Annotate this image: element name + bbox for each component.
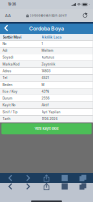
button[interactable]: Reload [79,9,91,22]
staticText: Soyadi [2,55,13,59]
staticText: Tel [2,76,7,80]
staticText: Yeni kayit ekle [34,126,58,131]
staticText: Adi [2,49,7,53]
staticText: 14803 [41,69,50,73]
button[interactable]: Back [1,172,19,183]
button[interactable]: Tabs [74,181,92,192]
staticText: M [41,83,44,87]
staticText: Beden [2,83,12,87]
staticText: Aktif [41,103,48,107]
staticText: Durum [2,96,12,100]
button[interactable]: Bookmarks [56,172,74,183]
staticText: 17.04.2024 [41,117,57,121]
button[interactable]: Yeni kayit ekle [1,123,92,134]
staticText: AA [5,13,11,18]
button[interactable]: Back [1,181,19,192]
staticText: cordobaboya.hizgin.gov.tr [30,14,67,17]
staticText: Cordoba Boya [29,25,64,32]
staticText: Sinif / Tip [2,110,17,114]
staticText: Sertbir Mavi [2,35,21,39]
button[interactable]: Share [37,172,56,183]
button[interactable]: Tabs [74,172,92,183]
staticText: Marka/Kod [2,62,19,66]
staticText: Ilce / Koy [2,90,17,93]
button[interactable]: Page settings [2,9,14,22]
staticText: 19:36 [8,3,16,6]
button[interactable]: Back [0,22,12,34]
staticText: Adres [2,69,11,73]
staticText: Ayri Yapilan [41,110,60,114]
staticText: Meltem [41,49,53,53]
staticText: 43°N [41,90,48,93]
staticText: 4521 [41,76,48,80]
button[interactable]: Share [37,181,56,192]
button[interactable]: Forward [19,172,37,183]
staticText: Zeytinlik [41,62,55,66]
staticText: Kayit No [2,103,15,107]
staticText: Tarih [2,117,10,121]
staticText: No [2,42,6,46]
staticText: Akrilik Laca [41,35,61,39]
button[interactable]: Forward [19,181,37,192]
staticText: Kurtulus [41,55,54,59]
staticText: 2556 [41,96,49,100]
button[interactable]: Bookmarks [56,181,74,192]
